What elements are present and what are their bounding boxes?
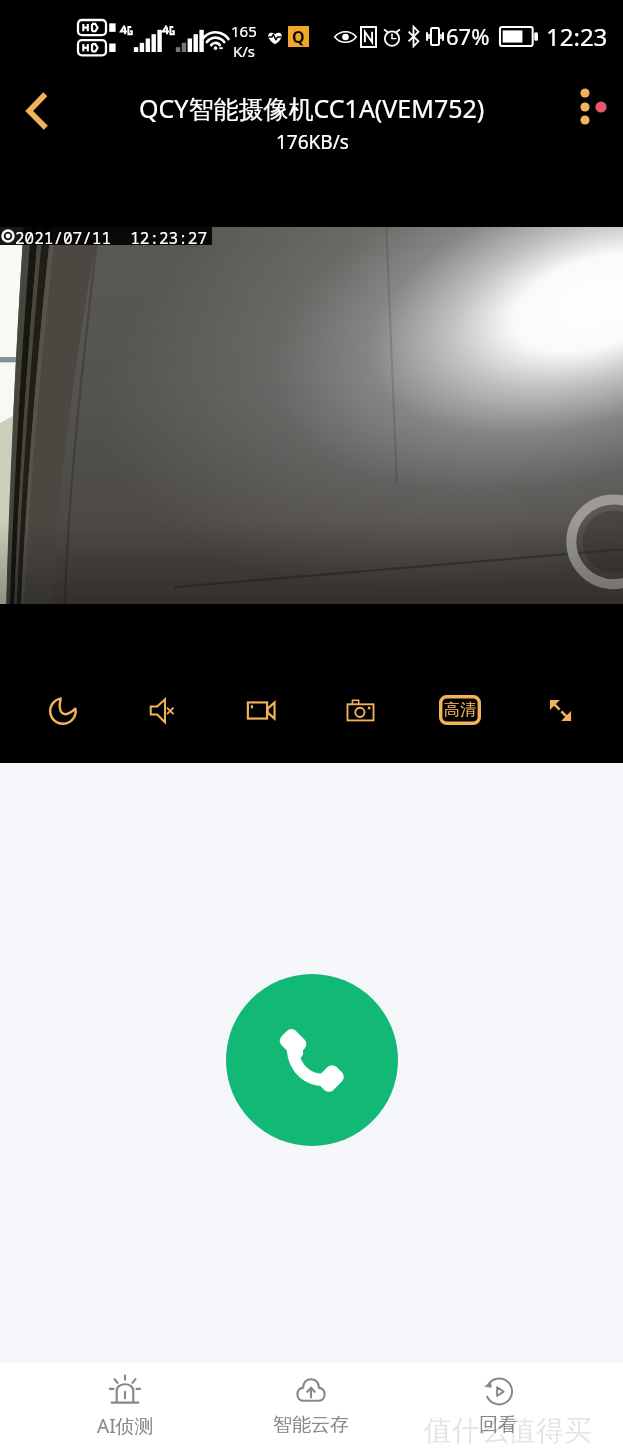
button[interactable]: Call <box>226 974 398 1146</box>
staticText: 值什么值得买 <box>424 1413 592 1448</box>
staticText: Q <box>292 26 305 47</box>
button[interactable]: Night mode <box>19 682 107 738</box>
staticText: K/s <box>233 41 256 61</box>
staticText: 回看 <box>479 1413 517 1437</box>
staticText: 2021/07/11 12:23:27 <box>15 227 208 245</box>
button[interactable]: Fullscreen <box>516 682 604 738</box>
button[interactable]: 回看 <box>438 1363 558 1437</box>
button[interactable]: Video quality HD <box>416 682 504 738</box>
staticText: 67% <box>446 21 490 51</box>
button[interactable]: More options <box>563 80 615 132</box>
button[interactable]: Take photo <box>316 682 404 738</box>
button[interactable]: Back <box>10 83 66 139</box>
button[interactable]: Record video <box>217 682 305 738</box>
staticText: 高清 <box>444 700 476 720</box>
staticText: 165 <box>231 21 257 41</box>
staticText: AI侦测 <box>97 1413 154 1439</box>
staticText: 智能云存 <box>273 1413 349 1437</box>
staticText: 12:23 <box>546 20 608 53</box>
button[interactable]: Mute <box>118 682 206 738</box>
button[interactable]: 智能云存 <box>251 1363 371 1437</box>
button[interactable]: AI侦测 <box>65 1363 185 1439</box>
staticText: QCY智能摄像机CC1A(VEM752) <box>139 91 485 125</box>
staticText: 176KB/s <box>276 129 349 155</box>
